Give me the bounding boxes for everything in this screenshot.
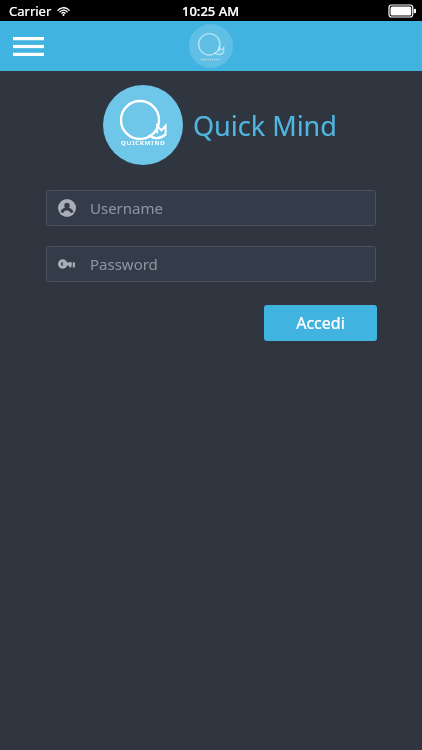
staticText: Accedi (296, 312, 345, 334)
button[interactable]: Username (46, 190, 376, 226)
staticText: 10:25 AM (182, 2, 240, 20)
staticText: Password (90, 254, 158, 274)
staticText: Username (90, 198, 163, 218)
staticText: QUICKMIND (121, 139, 166, 147)
staticText: Quick Mind (193, 107, 337, 144)
button[interactable]: Accedi (264, 305, 377, 341)
button[interactable]: Password (46, 246, 376, 282)
staticText: Carrier (9, 2, 52, 20)
button[interactable]: Quick Mind logo (189, 24, 233, 68)
button[interactable]: Menu (6, 24, 50, 68)
